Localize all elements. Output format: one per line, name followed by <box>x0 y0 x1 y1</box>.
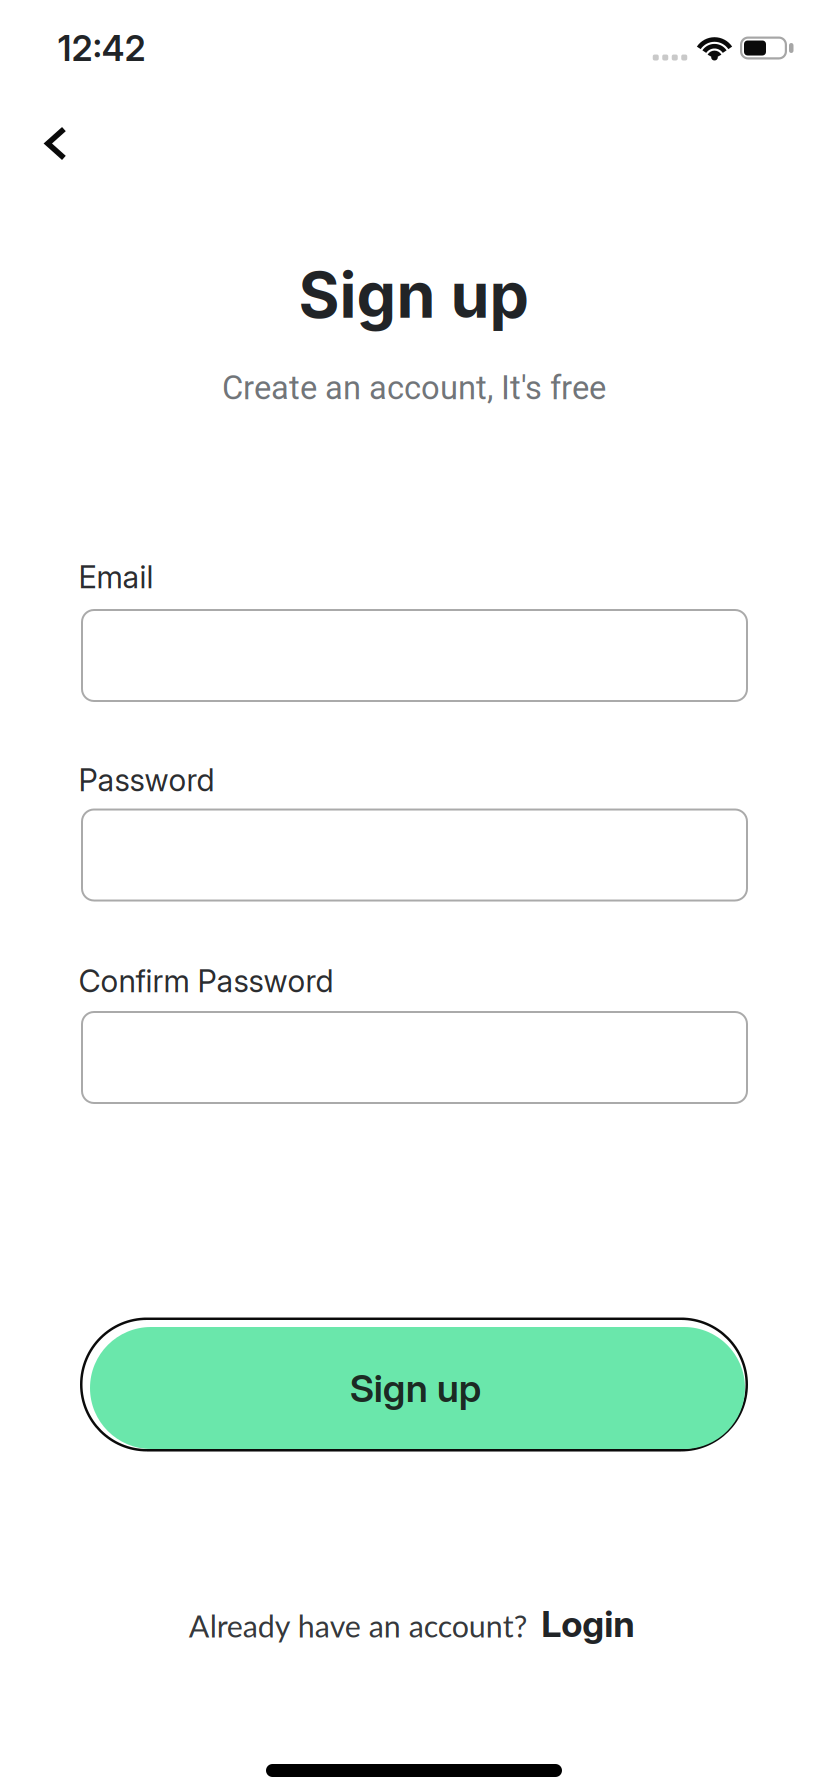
staticText: Create an account, It's free <box>222 369 606 407</box>
staticText: Confirm Password <box>78 962 333 999</box>
staticText: Already have an account? <box>189 1607 528 1644</box>
staticText: Login <box>541 1602 634 1646</box>
staticText: Email <box>78 558 153 595</box>
button[interactable]: Sign up <box>80 1317 748 1451</box>
staticText: Sign up <box>350 1365 482 1411</box>
staticText: Sign up <box>298 257 529 333</box>
button[interactable]: Login <box>541 1602 634 1646</box>
button[interactable]: Back <box>34 121 78 165</box>
staticText: 12:42 <box>58 27 146 69</box>
staticText: Password <box>78 761 214 798</box>
